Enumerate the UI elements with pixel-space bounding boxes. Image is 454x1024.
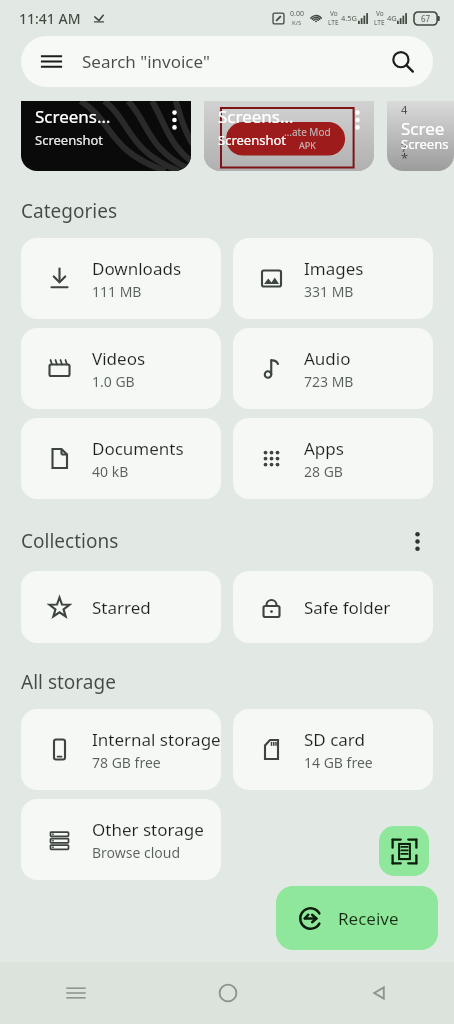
staticText: 7 <box>401 140 408 155</box>
staticText: 78 GB free <box>92 753 161 772</box>
staticText: Videos <box>92 347 146 370</box>
staticText: Browse cloud <box>92 843 181 862</box>
staticText: 0.00 <box>290 9 304 19</box>
staticText: 1.0 GB <box>92 372 135 391</box>
other: Search <box>391 50 414 73</box>
staticText: Screens <box>401 135 449 153</box>
staticText: Starred <box>92 596 151 619</box>
staticText: 11:41 AM <box>19 9 81 28</box>
staticText: Downloads <box>92 257 182 280</box>
staticText: 14 GB free <box>304 753 373 772</box>
staticText: 723 MB <box>304 372 354 391</box>
staticText: Receive <box>338 907 399 930</box>
staticText: Scree <box>401 117 445 140</box>
button[interactable]: Screens… <box>21 101 191 171</box>
staticText: 4G <box>387 13 397 23</box>
button[interactable]: Documents <box>21 418 221 499</box>
staticText: LTE <box>374 18 385 27</box>
staticText: 40 kB <box>92 462 129 481</box>
button[interactable]: Audio <box>233 328 433 409</box>
staticText: Vo <box>376 9 384 18</box>
button[interactable]: Collections options <box>401 525 433 557</box>
staticText: 4 <box>401 102 408 117</box>
staticText: * <box>401 149 409 167</box>
staticText: APK <box>299 139 316 151</box>
staticText: Images <box>304 257 364 280</box>
staticText: All storage <box>21 669 116 695</box>
staticText: Apps <box>304 437 344 460</box>
button[interactable]: Downloads <box>21 238 221 319</box>
button[interactable]: 4 <box>387 101 454 171</box>
staticText: Screens… <box>35 105 111 128</box>
staticText: Internal storage <box>92 728 221 751</box>
staticText: Screens… <box>218 105 294 128</box>
button[interactable]: Videos <box>21 328 221 409</box>
staticText: 67 <box>421 13 431 24</box>
staticText: Collections <box>21 528 119 554</box>
button[interactable]: Scan QR code <box>379 826 429 876</box>
button[interactable]: Screens… <box>204 101 374 171</box>
staticText: Safe folder <box>304 596 391 619</box>
button[interactable]: Open navigation menu <box>21 36 433 87</box>
staticText: Other storage <box>92 818 204 841</box>
button[interactable]: Other storage <box>21 799 221 880</box>
staticText: 4.5G <box>341 13 358 23</box>
button[interactable]: Starred <box>21 571 221 643</box>
other: More options <box>172 110 177 130</box>
other: Open navigation menu <box>40 50 63 73</box>
button[interactable]: Apps <box>233 418 433 499</box>
button[interactable]: SD card <box>233 709 433 790</box>
staticText: Documents <box>92 437 184 460</box>
button[interactable]: Images <box>233 238 433 319</box>
staticText: Audio <box>304 347 351 370</box>
button[interactable]: Home <box>152 962 303 1024</box>
staticText: SD card <box>304 728 365 751</box>
other: More options <box>355 110 360 130</box>
staticText: Vo <box>330 9 338 18</box>
staticText: 331 MB <box>304 282 354 301</box>
button[interactable]: Internal storage <box>21 709 221 790</box>
button[interactable]: Recent apps <box>0 962 152 1024</box>
staticText: Screenshot <box>35 131 104 149</box>
button[interactable]: Safe folder <box>233 571 433 643</box>
staticText: 111 MB <box>92 282 142 301</box>
staticText: …ate Mod <box>284 125 331 139</box>
staticText: Screenshot <box>218 131 287 149</box>
button[interactable]: Receive <box>276 886 438 950</box>
staticText: Search "invoice" <box>82 50 391 73</box>
staticText: LTE <box>328 18 339 27</box>
staticText: Categories <box>21 198 117 224</box>
staticText: K/S <box>292 19 302 27</box>
staticText: 28 GB <box>304 462 343 481</box>
button[interactable]: Back <box>303 962 454 1024</box>
